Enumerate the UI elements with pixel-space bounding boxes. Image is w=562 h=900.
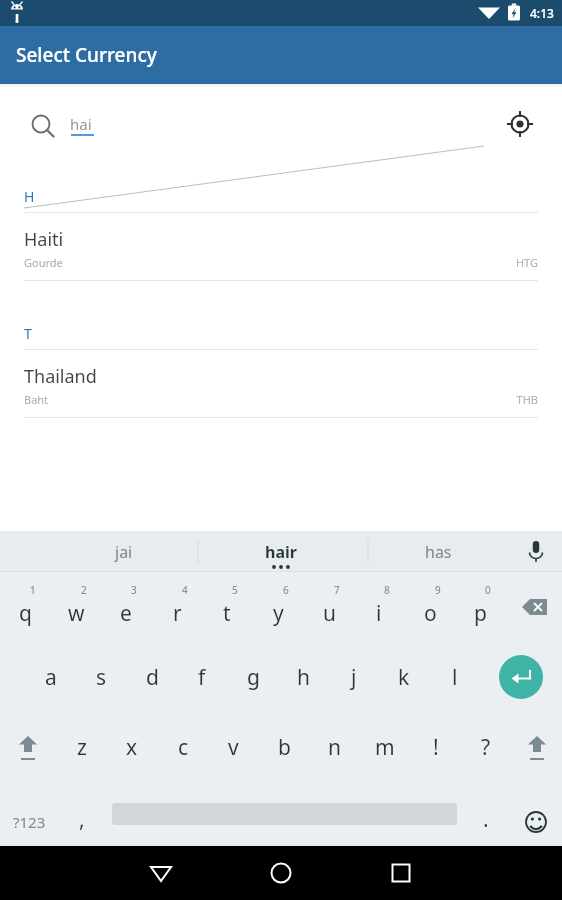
staticText: ! [433, 733, 439, 762]
staticText: z [77, 733, 87, 762]
staticText: , [79, 805, 85, 834]
staticText: f [198, 663, 206, 692]
button[interactable]: 3 [101, 583, 151, 629]
button[interactable]: Use my location [498, 102, 542, 146]
button[interactable]: Shift [512, 724, 562, 770]
staticText: a [45, 663, 57, 692]
button[interactable]: 2 [51, 583, 101, 629]
button[interactable]: b [259, 724, 309, 770]
staticText: 6 [283, 583, 289, 597]
button[interactable]: x [107, 724, 157, 770]
staticText: T [24, 324, 32, 343]
staticText: m [375, 733, 395, 762]
staticText: s [96, 663, 107, 692]
staticText: n [328, 733, 341, 762]
button[interactable]: g [228, 654, 278, 700]
button[interactable]: Backspace [511, 583, 559, 631]
staticText: r [173, 599, 182, 628]
staticText: y [273, 599, 284, 628]
staticText: j [351, 663, 357, 692]
button[interactable]: n [309, 724, 359, 770]
button[interactable]: h [278, 654, 328, 700]
staticText: o [424, 599, 437, 628]
staticText: has [425, 541, 452, 563]
staticText: b [278, 733, 291, 762]
staticText: THB [516, 392, 538, 407]
button[interactable]: Enter [499, 655, 543, 699]
button[interactable]: ! [411, 724, 461, 770]
staticText: Thailand [24, 364, 97, 389]
button[interactable]: Voice input [514, 531, 562, 572]
staticText: g [247, 663, 260, 692]
button[interactable]: 6 [253, 583, 303, 629]
button[interactable]: 7 [304, 583, 354, 629]
button[interactable]: Emoji [513, 799, 559, 845]
button[interactable]: Home [257, 846, 305, 900]
staticText: Baht [24, 392, 49, 407]
staticText: 1 [30, 583, 36, 597]
button[interactable]: d [127, 654, 177, 700]
staticText: 9 [435, 583, 441, 597]
button[interactable]: , [57, 796, 107, 842]
button[interactable]: 0 [455, 583, 505, 629]
staticText: t [223, 599, 231, 628]
button[interactable]: ? [461, 724, 511, 770]
button[interactable]: jai [74, 531, 174, 572]
button[interactable]: c [158, 724, 208, 770]
staticText: c [178, 733, 189, 762]
staticText: v [228, 733, 239, 762]
staticText: q [19, 599, 32, 628]
staticText: x [126, 733, 138, 762]
staticText: H [24, 187, 35, 206]
staticText: jai [115, 541, 133, 563]
staticText: i [376, 599, 382, 628]
staticText: 3 [131, 583, 137, 597]
button[interactable]: Thailand [0, 350, 562, 418]
staticText: l [452, 663, 458, 692]
button[interactable]: f [177, 654, 227, 700]
button[interactable]: Haiti [0, 213, 562, 281]
staticText: h [297, 663, 310, 692]
staticText: ?123 [13, 812, 46, 832]
button[interactable]: v [208, 724, 258, 770]
staticText: 8 [384, 583, 390, 597]
staticText: Haiti [24, 227, 64, 252]
staticText: w [68, 599, 85, 628]
staticText: u [323, 599, 336, 628]
button[interactable]: 5 [202, 583, 252, 629]
button[interactable]: k [379, 654, 429, 700]
staticText: hair [265, 541, 297, 563]
button[interactable]: s [76, 654, 126, 700]
button[interactable]: hair [231, 531, 331, 572]
button[interactable]: l [430, 654, 480, 700]
staticText: Select Currency [16, 42, 157, 68]
staticText: 5 [232, 583, 238, 597]
button[interactable]: 4 [152, 583, 202, 629]
button[interactable]: ?123 [0, 799, 58, 845]
staticText: 0 [485, 583, 491, 597]
staticText: k [398, 663, 410, 692]
button[interactable]: Shift [3, 724, 53, 770]
button[interactable]: Recent apps [377, 846, 425, 900]
staticText: hai [70, 114, 92, 134]
staticText: 4 [182, 583, 188, 597]
staticText: ? [481, 733, 491, 762]
button[interactable]: z [57, 724, 107, 770]
button[interactable]: j [329, 654, 379, 700]
button[interactable]: has [388, 531, 488, 572]
staticText: 4:13 [530, 5, 554, 21]
staticText: . [483, 805, 489, 834]
staticText: 7 [334, 583, 340, 597]
staticText: Gourde [24, 255, 63, 270]
button[interactable]: 8 [354, 583, 404, 629]
button[interactable]: m [360, 724, 410, 770]
button[interactable]: Back [137, 846, 185, 900]
staticText: 2 [81, 583, 87, 597]
button[interactable]: . [461, 796, 511, 842]
staticText: p [474, 599, 487, 628]
button[interactable]: 9 [405, 583, 455, 629]
staticText: HTG [515, 255, 538, 270]
button[interactable]: 1 [0, 583, 50, 629]
button[interactable]: a [26, 654, 76, 700]
